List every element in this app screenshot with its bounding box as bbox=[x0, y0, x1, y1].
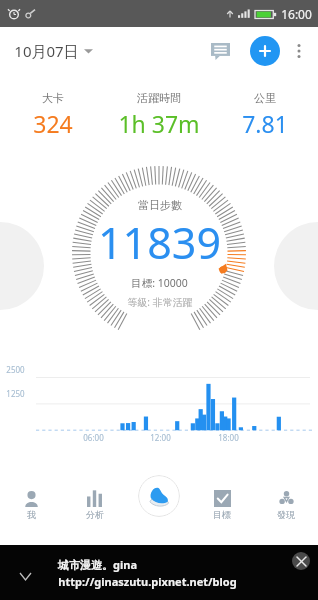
staticText: 發現 bbox=[277, 509, 295, 520]
button[interactable]: More options bbox=[284, 36, 314, 66]
staticText: 06:00 bbox=[83, 432, 104, 443]
button[interactable]: 活躍時間 bbox=[106, 89, 212, 141]
staticText: 城市漫遊。gina bbox=[58, 557, 137, 572]
button[interactable]: 發現 bbox=[254, 484, 318, 526]
staticText: 我 bbox=[27, 509, 36, 520]
staticText: 1250 bbox=[6, 388, 25, 399]
staticText: 11839 bbox=[98, 213, 221, 272]
button[interactable]: 公里 bbox=[212, 89, 318, 141]
staticText: 活躍時間 bbox=[137, 91, 181, 105]
staticText: 16:00 bbox=[281, 6, 312, 22]
button[interactable]: Messages bbox=[205, 36, 235, 66]
staticText: 等級: 非常活躍 bbox=[127, 295, 193, 309]
staticText: 大卡 bbox=[42, 91, 64, 105]
button[interactable]: Steps bbox=[138, 475, 180, 517]
button[interactable]: 目標 bbox=[190, 484, 254, 526]
staticText: 324 bbox=[33, 108, 73, 139]
button[interactable]: Close bbox=[292, 552, 310, 570]
button[interactable]: 分析 bbox=[63, 484, 126, 526]
staticText: 當日步數 bbox=[138, 198, 182, 212]
staticText: http://ginaszutu.pixnet.net/blog bbox=[58, 574, 237, 589]
staticText: 目標: 10000 bbox=[131, 276, 188, 290]
staticText: 18:00 bbox=[218, 432, 239, 443]
staticText: 1h 37m bbox=[118, 108, 200, 139]
staticText: 7.81 bbox=[242, 108, 288, 139]
button[interactable]: 我 bbox=[0, 484, 63, 526]
button[interactable]: 大卡 bbox=[0, 89, 106, 141]
staticText: 2500 bbox=[6, 364, 25, 375]
staticText: 分析 bbox=[86, 509, 104, 520]
staticText: 12:00 bbox=[150, 432, 171, 443]
staticText: 目標 bbox=[213, 509, 231, 520]
button[interactable]: 10月07日 bbox=[10, 37, 97, 65]
button[interactable]: Add bbox=[250, 36, 280, 66]
staticText: 公里 bbox=[254, 91, 276, 105]
staticText: 10月07日 bbox=[14, 41, 79, 61]
